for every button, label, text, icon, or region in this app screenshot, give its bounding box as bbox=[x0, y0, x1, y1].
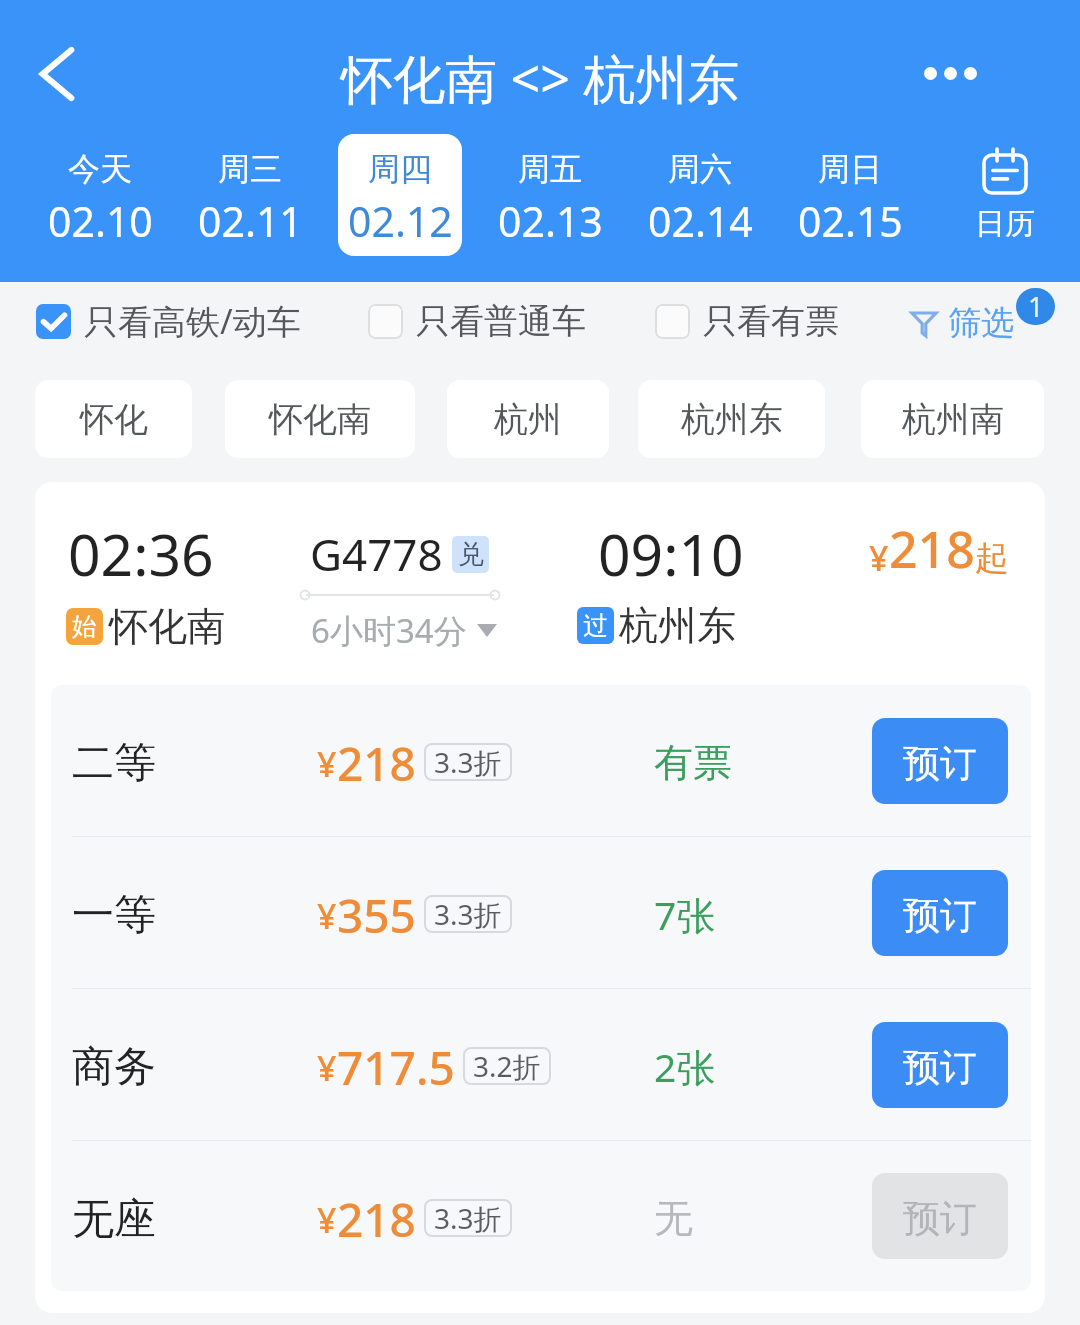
staticText: 商务 bbox=[72, 1041, 156, 1094]
button[interactable]: 杭州东 bbox=[638, 380, 825, 458]
staticText: 怀化南 bbox=[269, 398, 371, 441]
button[interactable]: 02:36 bbox=[35, 482, 1045, 1313]
button[interactable]: 杭州南 bbox=[861, 380, 1044, 458]
button[interactable]: 周五 bbox=[488, 134, 612, 256]
staticText: 怀化南 bbox=[109, 602, 226, 651]
staticText: 起 bbox=[975, 537, 1009, 580]
button[interactable]: 今天 bbox=[38, 134, 162, 256]
button[interactable]: 预订 bbox=[872, 870, 1008, 956]
button[interactable]: Calendar bbox=[945, 149, 1065, 261]
button[interactable]: 预订 bbox=[872, 1173, 1008, 1259]
staticText: 预订 bbox=[903, 740, 977, 787]
staticText: 02.13 bbox=[498, 193, 603, 249]
staticText: 预订 bbox=[903, 1195, 977, 1242]
staticText: ¥ bbox=[317, 1045, 337, 1091]
staticText: 355 bbox=[337, 884, 416, 947]
staticText: 1 bbox=[1028, 288, 1044, 325]
staticText: 周三 bbox=[218, 149, 282, 189]
staticText: 二等 bbox=[72, 737, 156, 790]
staticText: 杭州 bbox=[494, 398, 562, 441]
button[interactable]: 周四 bbox=[338, 134, 462, 256]
staticText: 3.3折 bbox=[434, 743, 502, 781]
button[interactable]: 怀化 bbox=[35, 380, 192, 458]
staticText: 无座 bbox=[72, 1193, 156, 1246]
staticText: 过 bbox=[583, 610, 608, 641]
button[interactable]: 周三 bbox=[188, 134, 312, 256]
staticText: 09:10 bbox=[598, 515, 744, 593]
staticText: 周六 bbox=[668, 149, 732, 189]
staticText: 02.11 bbox=[198, 193, 303, 249]
staticText: 3.3折 bbox=[434, 895, 502, 933]
staticText: 始 bbox=[72, 611, 97, 642]
staticText: 杭州南 bbox=[902, 398, 1004, 441]
staticText: 3.2折 bbox=[473, 1047, 541, 1085]
staticText: 怀化南 <> 杭州东 bbox=[341, 42, 740, 113]
staticText: ¥ bbox=[317, 1197, 337, 1243]
staticText: 02:36 bbox=[68, 515, 214, 593]
staticText: 预订 bbox=[903, 892, 977, 939]
staticText: 一等 bbox=[72, 889, 156, 942]
staticText: 02.14 bbox=[648, 193, 753, 249]
staticText: 218 bbox=[889, 515, 975, 583]
staticText: 218 bbox=[337, 732, 416, 795]
button[interactable]: 预订 bbox=[872, 718, 1008, 804]
button[interactable]: More options bbox=[910, 33, 990, 113]
staticText: 3.3折 bbox=[434, 1199, 502, 1237]
staticText: ¥ bbox=[869, 535, 889, 581]
staticText: 6小时34分 bbox=[311, 608, 467, 653]
button[interactable]: 筛选 bbox=[911, 295, 1014, 351]
staticText: 今天 bbox=[68, 149, 132, 189]
button[interactable]: 只看普通车 bbox=[368, 290, 586, 352]
staticText: ¥ bbox=[317, 741, 337, 787]
staticText: 周日 bbox=[818, 149, 882, 189]
button[interactable]: 杭州 bbox=[447, 380, 609, 458]
staticText: 杭州东 bbox=[619, 601, 736, 650]
button[interactable]: 只看有票 bbox=[655, 290, 839, 352]
staticText: ¥ bbox=[317, 893, 337, 939]
staticText: 日历 bbox=[975, 205, 1035, 243]
button[interactable]: 预订 bbox=[872, 1022, 1008, 1108]
staticText: 717.5 bbox=[337, 1036, 455, 1099]
staticText: 预订 bbox=[903, 1044, 977, 1091]
staticText: 周五 bbox=[518, 149, 582, 189]
staticText: 只看有票 bbox=[703, 300, 839, 343]
button[interactable]: 只看高铁/动车 bbox=[36, 290, 301, 352]
button[interactable]: 周日 bbox=[788, 134, 912, 256]
staticText: 无 bbox=[654, 1194, 693, 1243]
staticText: 有票 bbox=[654, 738, 732, 787]
staticText: 周四 bbox=[368, 149, 432, 189]
staticText: 杭州东 bbox=[681, 398, 783, 441]
staticText: 怀化 bbox=[80, 398, 148, 441]
staticText: 筛选 bbox=[948, 302, 1014, 344]
staticText: 218 bbox=[337, 1188, 416, 1251]
staticText: 只看高铁/动车 bbox=[84, 298, 301, 344]
staticText: 兑 bbox=[458, 538, 484, 571]
button[interactable]: 怀化南 bbox=[225, 380, 415, 458]
staticText: 只看普通车 bbox=[416, 300, 586, 343]
staticText: 2张 bbox=[654, 1040, 716, 1093]
staticText: G4778 bbox=[310, 524, 443, 584]
button[interactable]: Back bbox=[17, 34, 97, 114]
staticText: 02.10 bbox=[48, 193, 153, 249]
staticText: 02.12 bbox=[348, 193, 453, 249]
button[interactable]: 周六 bbox=[638, 134, 762, 256]
staticText: 02.15 bbox=[798, 193, 903, 249]
staticText: 7张 bbox=[654, 888, 716, 941]
